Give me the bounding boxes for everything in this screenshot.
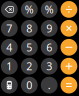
staticText: % [45,2,54,16]
staticText: 7 [6,21,12,35]
button[interactable]: 6 [41,39,58,56]
button[interactable]: Delete [1,1,18,18]
button[interactable]: 0 [21,77,38,93]
button[interactable]: Equals [60,77,77,93]
button[interactable]: Multiply [60,20,77,37]
button[interactable]: % [41,1,58,18]
staticText: 8 [26,21,32,35]
button[interactable]: 1 [1,58,18,75]
staticText: 3 [46,59,52,73]
button[interactable]: 3 [41,58,58,75]
button[interactable]: 5 [21,39,38,56]
button[interactable]: . [41,77,58,93]
button[interactable]: % [21,1,38,18]
button[interactable]: Subtract [60,39,77,56]
staticText: 2 [26,59,32,73]
button[interactable]: Tip calculator [1,77,18,93]
staticText: 5 [26,40,32,54]
staticText: . [48,78,51,92]
button[interactable]: 4 [1,39,18,56]
button[interactable]: Add [60,58,77,75]
button[interactable]: 2 [21,58,38,75]
button[interactable]: 8 [21,20,38,37]
button[interactable]: Divide [60,1,77,18]
staticText: 1 [6,59,12,73]
staticText: 0 [26,78,32,92]
staticText: 6 [46,40,52,54]
button[interactable]: 7 [1,20,18,37]
staticText: 4 [6,40,12,54]
button[interactable]: 9 [41,20,58,37]
staticText: 9 [46,21,52,35]
staticText: % [25,2,34,16]
